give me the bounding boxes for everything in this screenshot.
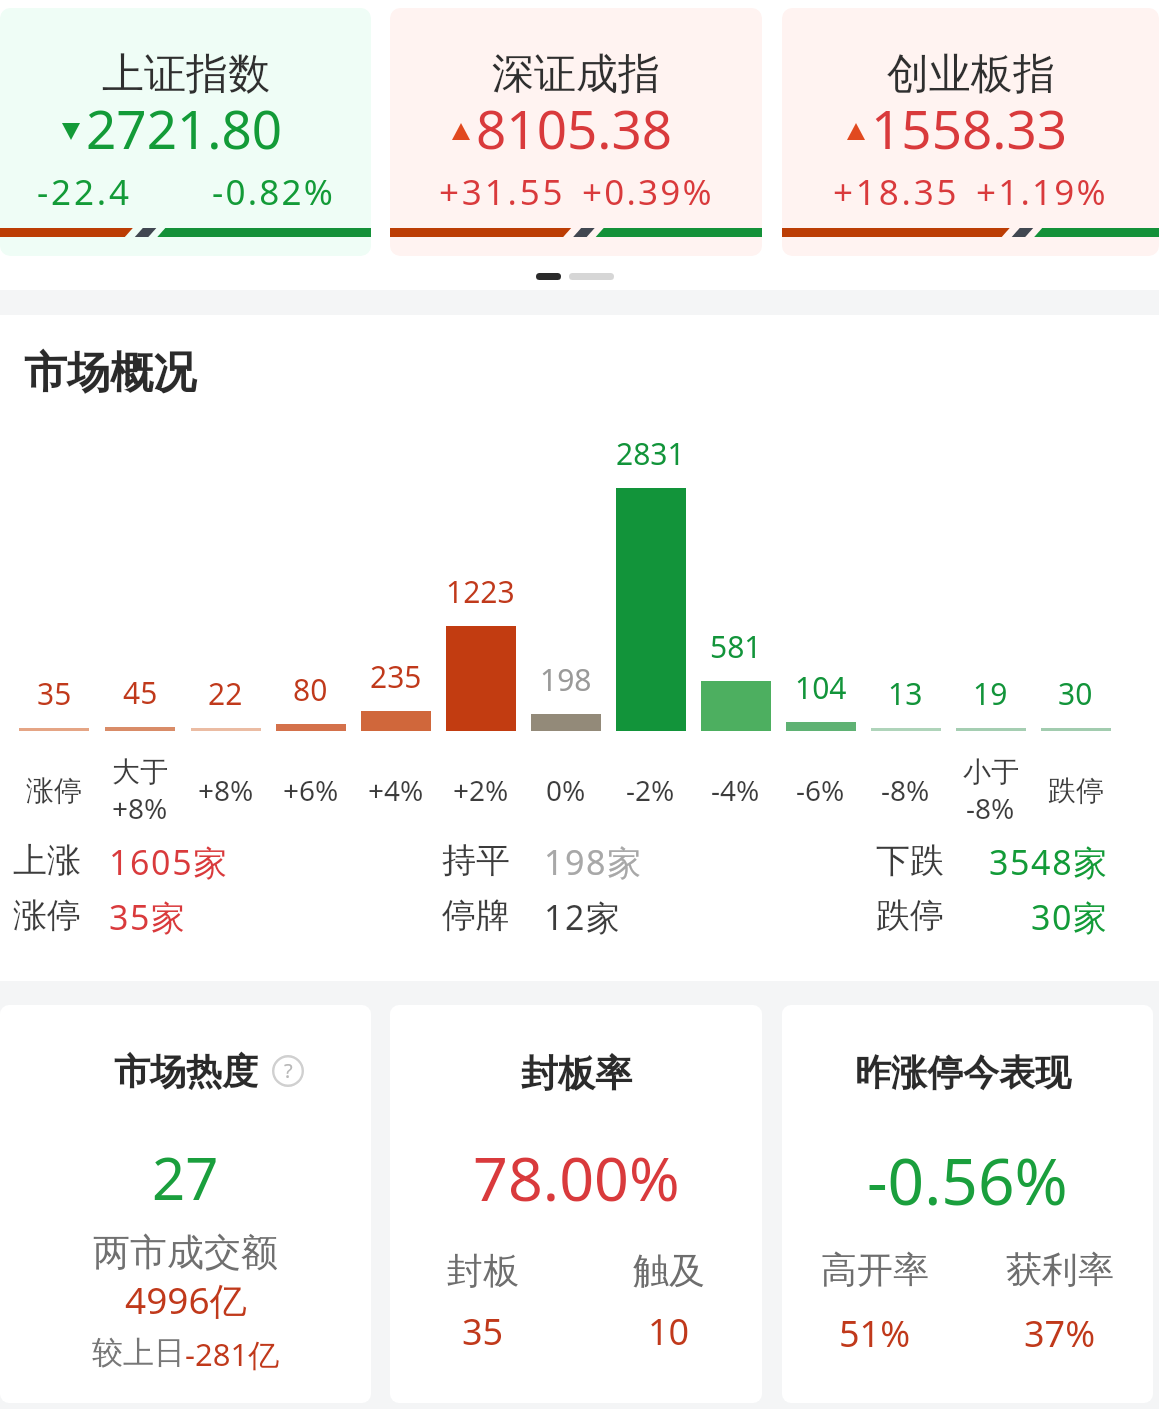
staticText: 35家 <box>109 894 187 940</box>
staticText: +6% <box>283 771 339 809</box>
staticText: 104 <box>795 667 847 708</box>
staticText: 1223 <box>446 571 515 612</box>
staticText: 3548家 <box>989 839 1109 885</box>
staticText: 235 <box>370 656 422 697</box>
staticText: 35 <box>462 1307 504 1356</box>
staticText: 198 <box>540 659 592 700</box>
staticText: 市场热度 <box>114 1049 258 1094</box>
staticText: -22.4 <box>37 168 132 216</box>
staticText: 27 <box>152 1138 219 1217</box>
staticText: 13 <box>888 673 923 714</box>
staticText: 获利率 <box>1006 1247 1114 1292</box>
staticText: 1558.33 <box>871 92 1068 164</box>
staticText: 下跌 <box>876 839 944 882</box>
staticText: +0.39% <box>582 168 714 216</box>
staticText: 创业板指 <box>887 48 1055 101</box>
staticText: 0% <box>546 771 586 809</box>
staticText: 昨涨停今表现 <box>855 1050 1071 1095</box>
button[interactable]: 上证指数 <box>0 8 371 256</box>
staticText: +8% <box>198 771 254 809</box>
button[interactable]: 封板率 <box>390 1005 762 1403</box>
staticText: 8105.38 <box>476 92 673 164</box>
button[interactable]: 深证成指 <box>390 8 762 256</box>
staticText: 高开率 <box>821 1247 929 1292</box>
staticText: 35 <box>37 673 72 714</box>
staticText: 深证成指 <box>492 48 660 101</box>
staticText: 上涨 <box>13 839 81 882</box>
staticText: 80 <box>293 669 328 710</box>
staticText: 4996亿 <box>125 1274 247 1325</box>
staticText: 19 <box>973 673 1008 714</box>
staticText: +18.35 <box>833 168 960 216</box>
staticText: +31.55 <box>439 168 566 216</box>
staticText: 触及 <box>633 1248 705 1293</box>
staticText: 12家 <box>544 894 622 940</box>
staticText: 581 <box>710 626 762 667</box>
staticText: +8% <box>112 789 168 827</box>
staticText: 78.00% <box>473 1136 680 1219</box>
staticText: 封板 <box>447 1248 519 1293</box>
staticText: -0.56% <box>867 1137 1068 1224</box>
staticText: 45 <box>123 672 158 713</box>
staticText: 上证指数 <box>102 48 270 101</box>
staticText: 跌停 <box>876 894 944 937</box>
button[interactable]: 昨涨停今表现 <box>782 1005 1153 1403</box>
staticText: 198家 <box>544 839 643 885</box>
button[interactable]: 市场热度 <box>0 1005 371 1403</box>
staticText: 跌停 <box>1048 773 1104 808</box>
staticText: -8% <box>881 771 930 809</box>
button[interactable]: 市场热度说明 <box>272 1055 304 1087</box>
staticText: -281亿 <box>185 1333 280 1375</box>
button[interactable]: 创业板指 <box>782 8 1159 256</box>
staticText: 小于 <box>963 754 1019 789</box>
staticText: -8% <box>966 789 1015 827</box>
button[interactable]: 第一页 <box>536 273 561 280</box>
staticText: 2831 <box>616 433 685 474</box>
staticText: 两市成交额 <box>93 1229 278 1276</box>
staticText: +2% <box>453 771 509 809</box>
staticText: +4% <box>368 771 424 809</box>
staticText: 市场概况 <box>24 346 196 400</box>
staticText: -4% <box>711 771 760 809</box>
staticText: -0.82% <box>212 168 335 216</box>
staticText: 30家 <box>1031 894 1109 940</box>
staticText: 10 <box>648 1307 690 1356</box>
staticText: 51% <box>839 1309 911 1358</box>
button[interactable]: 第二页 <box>569 273 614 280</box>
staticText: 封板率 <box>521 1050 632 1097</box>
staticText: 大于 <box>112 754 168 789</box>
staticText: 停牌 <box>442 894 510 937</box>
staticText: 1605家 <box>109 839 229 885</box>
staticText: 较上日 <box>92 1333 185 1372</box>
staticText: -2% <box>626 771 675 809</box>
staticText: 持平 <box>442 839 510 882</box>
staticText: 22 <box>208 673 243 714</box>
staticText: 37% <box>1024 1309 1096 1358</box>
staticText: 涨停 <box>13 894 81 937</box>
staticText: +1.19% <box>976 168 1108 216</box>
staticText: 2721.80 <box>86 92 283 164</box>
staticText: 30 <box>1058 673 1093 714</box>
staticText: ? <box>284 1057 293 1084</box>
staticText: 涨停 <box>26 773 82 808</box>
staticText: -6% <box>796 771 845 809</box>
